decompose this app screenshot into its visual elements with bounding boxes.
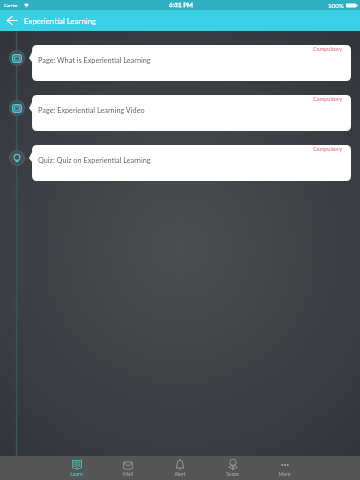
button[interactable]: Page: Experiential Learning Video [0, 95, 360, 131]
button[interactable]: Learn [50, 456, 102, 480]
staticText: Page: Experiential Learning Video [38, 106, 145, 115]
button[interactable]: Page: What is Experiential Learning [0, 45, 360, 81]
staticText: Carrier [4, 2, 18, 8]
button[interactable]: Alert [154, 456, 206, 480]
staticText: Page: What is Experiential Learning [38, 56, 151, 65]
staticText: Experiential Learning [24, 16, 97, 25]
staticText: More [278, 471, 291, 477]
staticText: Compulsory [313, 46, 343, 53]
staticText: 100% [328, 2, 344, 9]
button[interactable]: Score [206, 456, 258, 480]
button[interactable]: Mail [102, 456, 154, 480]
staticText: Quiz: Quiz on Experiential Learning [38, 156, 151, 165]
staticText: Learn [70, 471, 83, 477]
button[interactable]: More [258, 456, 310, 480]
staticText: 6:31 PM [169, 1, 193, 9]
staticText: Compulsory [313, 96, 343, 103]
staticText: Score [226, 471, 239, 477]
staticText: Alert [174, 471, 186, 477]
staticText: Compulsory [313, 146, 343, 153]
staticText: Mail [123, 471, 133, 477]
button[interactable]: Back [0, 10, 24, 31]
button[interactable]: Quiz: Quiz on Experiential Learning [0, 145, 360, 181]
